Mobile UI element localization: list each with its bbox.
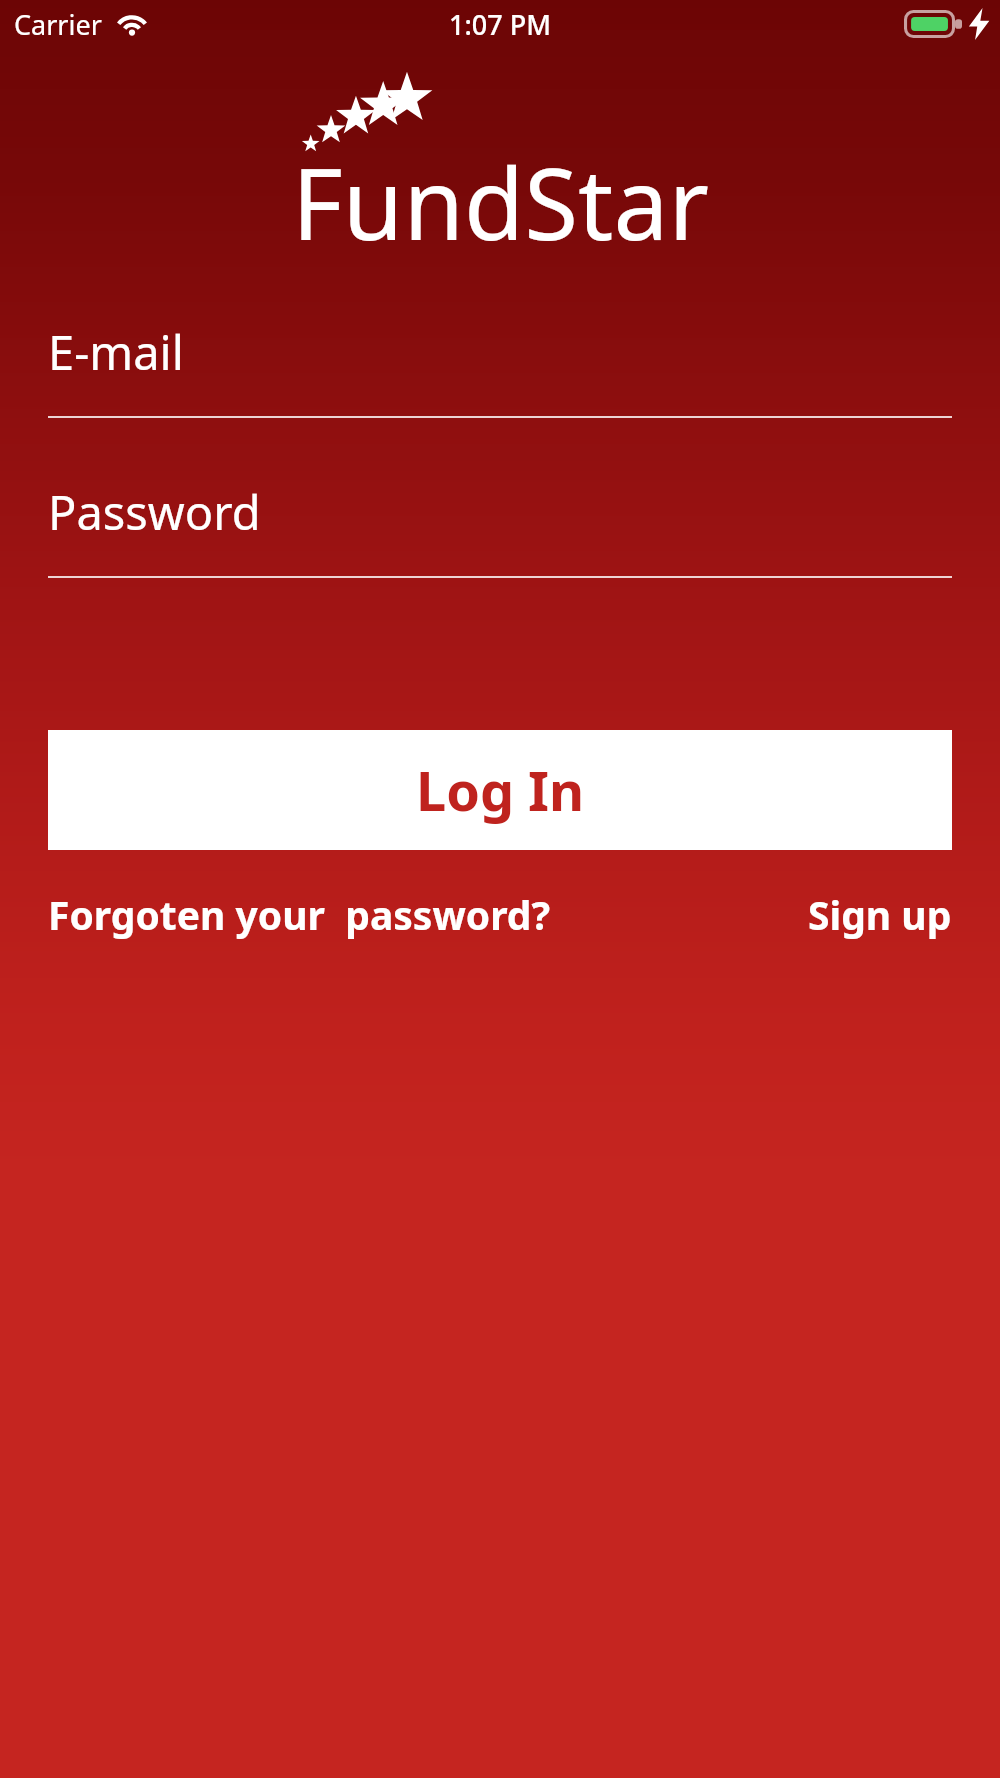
staticText: 1:07 PM (449, 6, 551, 43)
button[interactable]: Sign up (808, 888, 952, 941)
staticText: Log In (416, 753, 585, 827)
button[interactable]: Forgoten your password? (48, 888, 551, 941)
button[interactable]: Log In (48, 730, 952, 850)
button[interactable]: E-mail (48, 320, 952, 418)
staticText: FundStar (292, 135, 709, 268)
staticText: Sign up (808, 888, 952, 941)
button[interactable]: Password (48, 480, 952, 578)
staticText: Carrier (14, 6, 102, 43)
staticText: E-mail (48, 320, 184, 384)
staticText: Password (48, 480, 261, 544)
other: Battery charging (904, 10, 962, 38)
other: Wi-Fi signal (114, 11, 150, 38)
staticText: Forgoten your password? (48, 888, 551, 941)
